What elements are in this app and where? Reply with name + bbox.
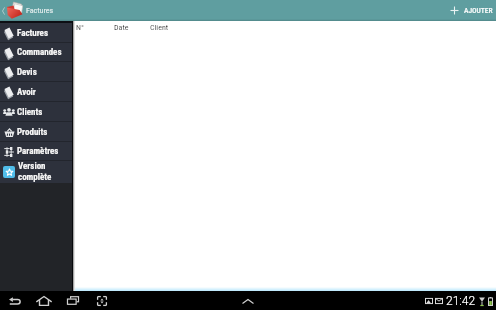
staticText: 21:42 [446,294,476,308]
button[interactable]: Avoir [0,82,72,102]
button[interactable]: Home [29,291,58,310]
button[interactable]: Devis [0,62,72,82]
staticText: Produits [17,127,48,138]
button[interactable]: Produits [0,122,72,142]
staticText: Paramètres [17,146,59,157]
button[interactable]: Factures [0,0,54,21]
staticText: Avoir [17,87,36,98]
button[interactable]: Back [1,291,29,310]
button[interactable]: AJOUTER [450,0,496,21]
staticText: Factures [26,6,54,15]
staticText: Factures [17,28,48,39]
staticText: Commandes [17,47,62,58]
staticText: complète [18,172,52,183]
staticText: Devis [17,67,37,78]
staticText: N° [76,23,84,32]
button[interactable]: Factures [0,23,72,43]
button[interactable]: Screenshot [87,291,116,310]
button[interactable]: Status [425,294,493,308]
button[interactable]: Commandes [0,43,72,62]
button[interactable]: Recent apps [58,291,87,310]
staticText: Date [114,23,129,32]
staticText: AJOUTER [464,6,493,15]
button[interactable]: Version [0,161,72,183]
staticText: Clients [17,107,43,118]
button[interactable]: Paramètres [0,142,72,161]
button[interactable]: Clients [0,102,72,122]
button[interactable]: Expand status bar [239,295,257,307]
staticText: Version [18,161,46,172]
staticText: Client [150,23,169,32]
